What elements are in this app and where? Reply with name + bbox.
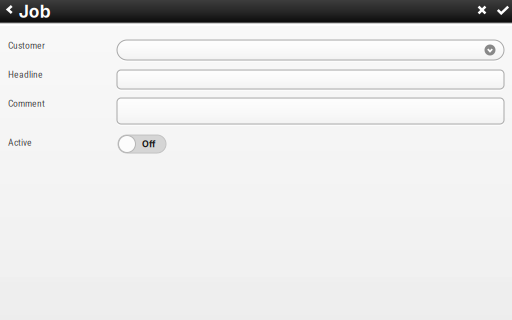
button[interactable]: Job — [3, 0, 55, 23]
button[interactable]: Comment — [117, 98, 504, 124]
button[interactable]: Save — [492, 0, 512, 23]
staticText: Headline — [8, 69, 43, 80]
staticText: Job — [19, 1, 51, 22]
staticText: Off — [142, 139, 156, 149]
staticText: Comment — [8, 98, 45, 109]
staticText: Customer — [8, 40, 45, 51]
button[interactable]: Customer, choose — [117, 40, 504, 60]
button[interactable]: Headline — [117, 70, 504, 89]
staticText: Active — [8, 137, 32, 148]
button[interactable]: Cancel — [470, 0, 494, 23]
button[interactable]: Active, off — [118, 135, 166, 153]
